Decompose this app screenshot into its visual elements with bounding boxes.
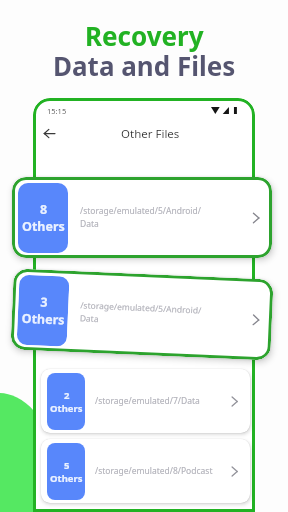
staticText: Other Files xyxy=(121,126,180,142)
staticText: Others xyxy=(22,218,65,235)
staticText: 8 xyxy=(40,201,48,218)
staticText: Data and Files xyxy=(53,48,236,83)
staticText: /storage/emulated/5/Android/ xyxy=(80,299,201,317)
staticText: 15:15 xyxy=(47,106,67,116)
staticText: 5 xyxy=(64,459,70,472)
staticText: Recovery xyxy=(85,18,204,53)
staticText: /storage/emulated/5/Android/ xyxy=(80,205,201,217)
button[interactable]: 5 xyxy=(41,439,250,503)
staticText: 2 xyxy=(64,389,70,402)
staticText: /storage/emulated/7/Data xyxy=(95,395,227,407)
button[interactable]: 3 xyxy=(10,268,274,361)
staticText: /storage/emulated/8/Podcast xyxy=(95,465,227,477)
staticText: Others xyxy=(50,402,83,415)
staticText: Others xyxy=(21,310,65,329)
button[interactable]: Back xyxy=(37,122,61,145)
staticText: Data xyxy=(79,312,99,325)
staticText: Others xyxy=(50,472,83,485)
button[interactable]: 2 xyxy=(41,369,250,433)
button[interactable]: 8 xyxy=(12,177,272,258)
staticText: Data xyxy=(80,218,99,230)
staticText: 3 xyxy=(40,294,49,311)
